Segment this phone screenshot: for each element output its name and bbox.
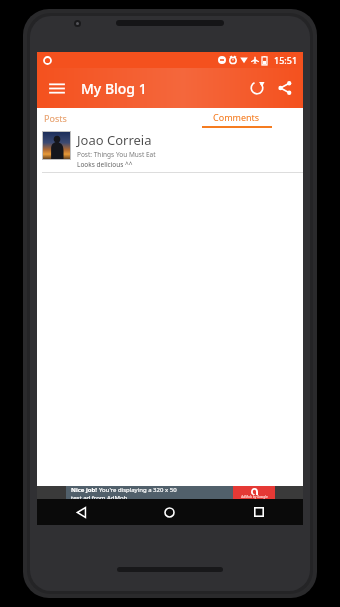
button[interactable]: Recent apps — [214, 499, 303, 525]
button[interactable]: Home — [125, 499, 214, 525]
button[interactable]: Comments — [170, 108, 303, 128]
staticText: Post: Things You Must Eat — [77, 150, 156, 159]
staticText: AdMob by Google — [241, 495, 268, 499]
staticText: test ad from AdMob. — [71, 494, 129, 499]
staticText: Looks delicious ^^ — [77, 160, 133, 169]
button[interactable]: Advertisement — [37, 486, 303, 499]
button[interactable]: Open navigation drawer — [43, 74, 71, 102]
button[interactable]: Back — [37, 499, 125, 525]
staticText: Posts — [44, 112, 67, 124]
staticText: My Blog 1 — [81, 79, 147, 98]
staticText: Nice job! — [71, 486, 99, 494]
staticText: Comments — [213, 111, 260, 123]
staticText: You're displaying a 320 x 50 — [99, 486, 177, 494]
button[interactable]: Posts — [37, 108, 170, 128]
staticText: 15:51 — [274, 54, 298, 66]
button[interactable]: Share — [271, 74, 299, 102]
staticText: Joao Correia — [77, 131, 152, 149]
button[interactable]: Joao Correia — [37, 128, 303, 173]
button[interactable]: Refresh — [243, 74, 271, 102]
